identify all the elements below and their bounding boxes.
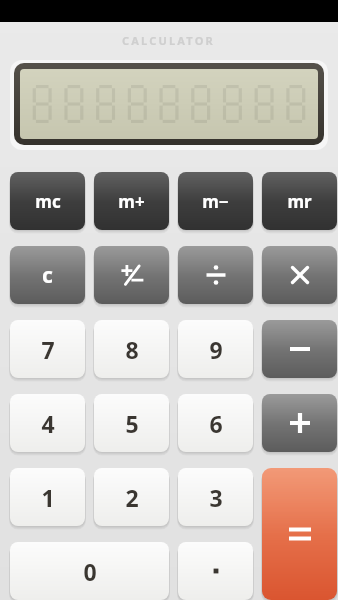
button[interactable]: 7 [10,320,85,378]
staticText: m− [202,190,229,213]
staticText: 9 [209,334,223,365]
staticText: 6 [209,408,223,439]
staticText: 1 [41,482,55,513]
button[interactable]: Multiply [262,246,337,304]
staticText: CALCULATOR [122,33,216,48]
button[interactable]: Subtract [262,320,337,378]
button[interactable]: 4 [10,394,85,452]
button[interactable]: m− [178,172,253,230]
button[interactable]: 5 [94,394,169,452]
staticText: c [42,261,53,290]
staticText: 4 [41,408,55,439]
staticText: m+ [118,190,145,213]
button[interactable]: 2 [94,468,169,526]
staticText: 8 [125,334,139,365]
staticText: 7 [41,334,55,365]
staticText: 3 [209,482,223,513]
button[interactable]: Plus minus [94,246,169,304]
button[interactable]: 3 [178,468,253,526]
button[interactable]: m+ [94,172,169,230]
staticText: mr [287,190,312,213]
button[interactable]: 6 [178,394,253,452]
button[interactable]: 1 [10,468,85,526]
button[interactable]: Divide [178,246,253,304]
button[interactable]: Decimal point [178,542,253,600]
staticText: 2 [125,482,139,513]
button[interactable]: Equals [262,468,337,600]
button[interactable]: mr [262,172,337,230]
button[interactable]: 9 [178,320,253,378]
button[interactable]: mc [10,172,85,230]
button[interactable]: 8 [94,320,169,378]
staticText: 0 [83,556,97,587]
button[interactable]: Clear [10,246,85,304]
staticText: 5 [125,408,139,439]
button[interactable]: 0 [10,542,169,600]
button[interactable]: Add [262,394,337,452]
staticText: mc [35,190,61,213]
